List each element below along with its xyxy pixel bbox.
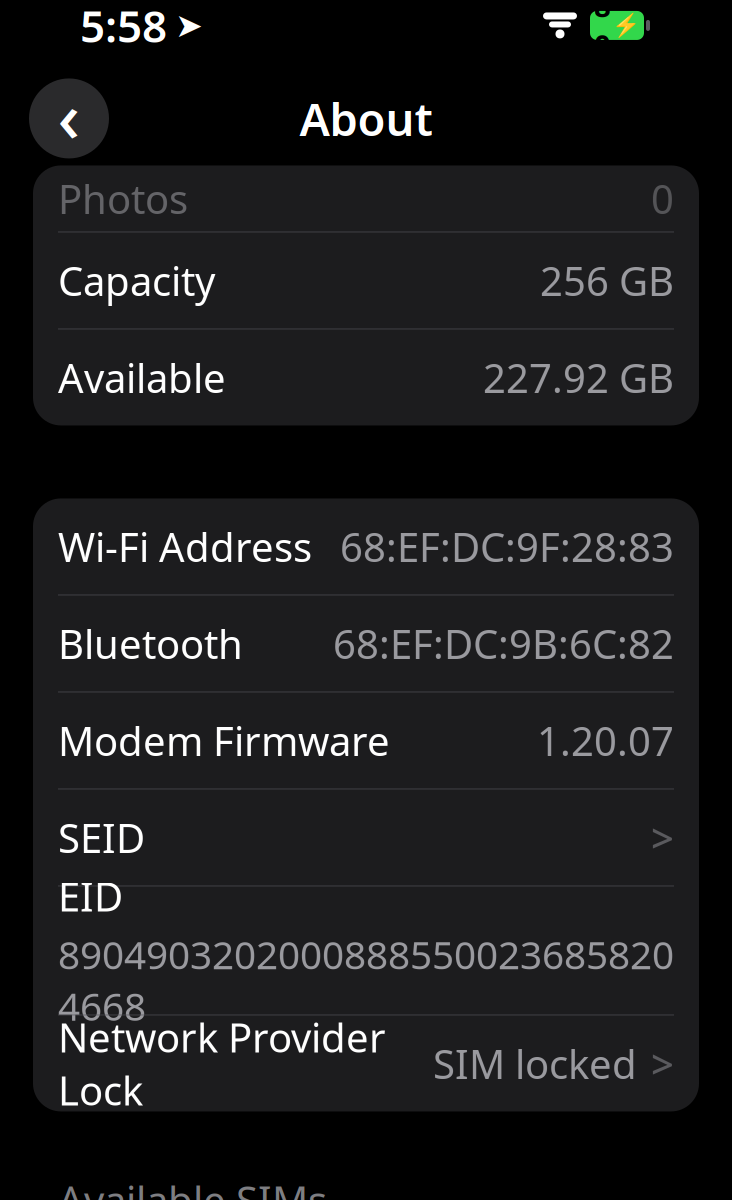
staticText: Available SIMs <box>58 1173 327 1200</box>
button[interactable]: SEID <box>33 789 699 885</box>
button[interactable]: Bluetooth <box>33 595 699 691</box>
button[interactable]: Network Provider Lock <box>33 1015 699 1111</box>
button[interactable]: Photos <box>33 165 699 231</box>
staticText: 1.20.07 <box>537 714 674 767</box>
staticText: ➤ <box>175 6 203 44</box>
staticText: Photos <box>58 172 188 225</box>
staticText: Available <box>58 351 226 404</box>
staticText: > <box>651 1037 674 1090</box>
staticText: Wi-Fi Address <box>58 520 312 573</box>
staticText: SIM locked <box>433 1037 637 1090</box>
staticText: About <box>299 88 432 148</box>
button[interactable]: Available <box>33 329 699 425</box>
button[interactable]: Wi-Fi Address <box>33 498 699 594</box>
button[interactable]: Back <box>29 78 109 158</box>
staticText: EID <box>58 869 123 923</box>
staticText: 227.92 GB <box>483 351 674 404</box>
staticText: SEID <box>58 811 145 864</box>
staticText: ⚡ <box>612 12 640 38</box>
staticText: 5:58 <box>80 0 167 55</box>
staticText: Bluetooth <box>58 617 243 670</box>
staticText: 256 GB <box>540 254 674 307</box>
staticText: 89049032020008885500236858204668 <box>58 929 674 1031</box>
button[interactable]: EID <box>33 886 699 1014</box>
staticText: 0 <box>651 172 674 225</box>
staticText: 80 <box>594 0 611 64</box>
staticText: Modem Firmware <box>58 714 390 767</box>
button[interactable]: Capacity <box>33 232 699 328</box>
staticText: ‹ <box>57 69 80 161</box>
staticText: Capacity <box>58 254 215 307</box>
staticText: Network Provider Lock <box>58 1010 386 1116</box>
staticText: > <box>651 811 674 864</box>
button[interactable]: Modem Firmware <box>33 692 699 788</box>
staticText: 68:EF:DC:9F:28:83 <box>340 520 674 573</box>
staticText: 68:EF:DC:9B:6C:82 <box>333 617 674 670</box>
